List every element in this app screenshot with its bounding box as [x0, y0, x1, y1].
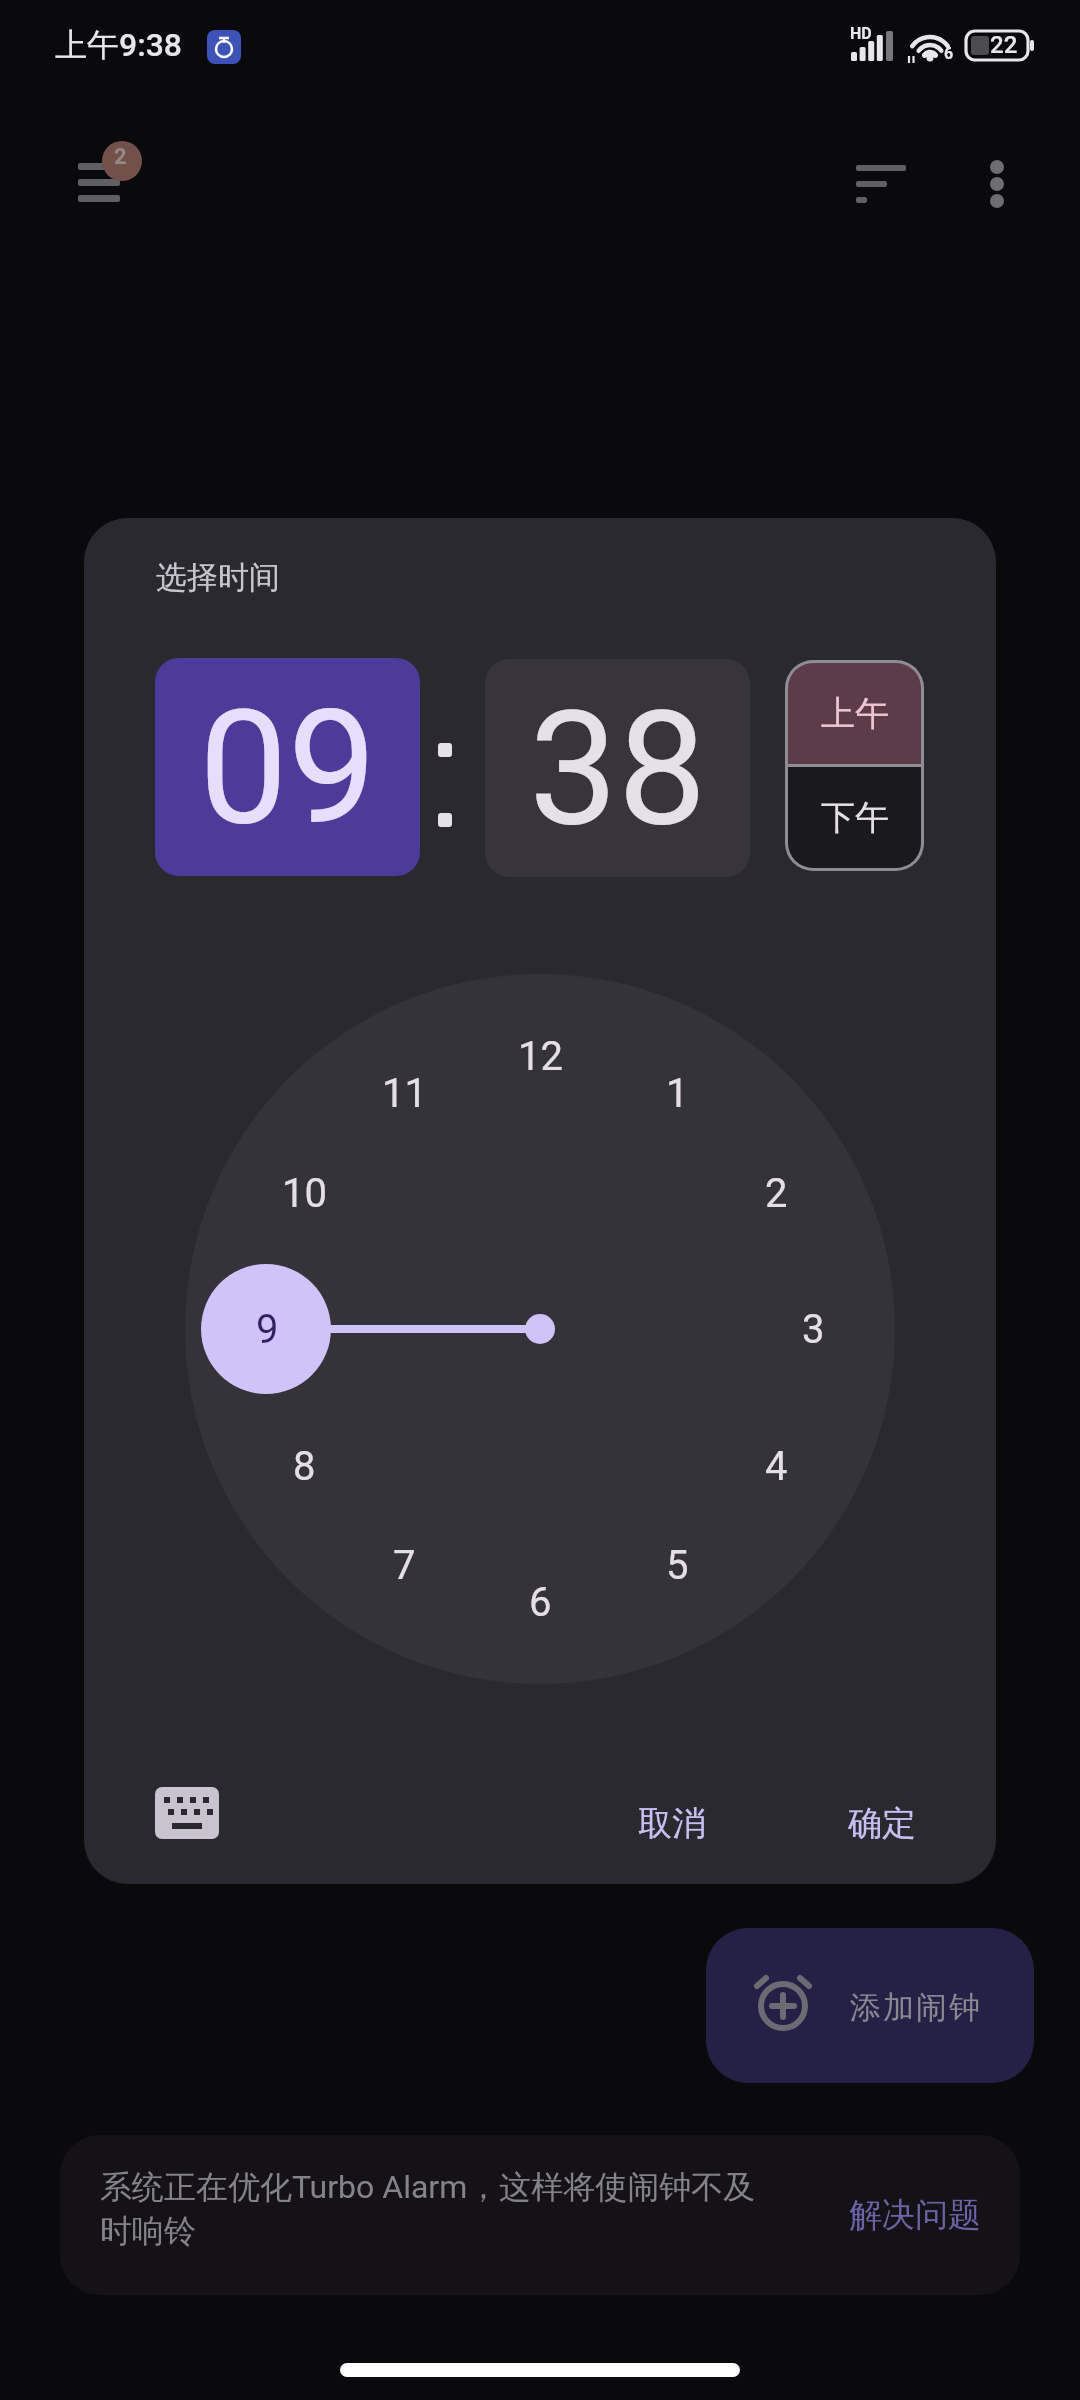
staticText: 2 — [765, 1170, 788, 1217]
button[interactable]: 添加闹钟 — [706, 1928, 1034, 2083]
button[interactable]: 确定 — [807, 1788, 957, 1858]
staticText: 6 — [944, 44, 954, 63]
staticText: 系统正在优化Turbo Alarm，这样将使闹钟不及 时响铃 — [100, 2167, 756, 2251]
staticText: 6 — [529, 1579, 552, 1626]
button[interactable] — [132, 1763, 242, 1863]
staticText: 9 — [256, 1306, 279, 1353]
staticText: 取消 — [638, 1802, 706, 1845]
staticText: 解决问题 — [849, 2194, 981, 2236]
staticText: 上午9:38 — [55, 25, 183, 65]
staticText: 09 — [199, 675, 377, 860]
staticText: 3 — [802, 1306, 825, 1353]
staticText: 添加闹钟 — [849, 1988, 981, 2027]
button[interactable] — [836, 145, 926, 225]
button[interactable]: 取消 — [597, 1788, 747, 1858]
button[interactable]: 下午 — [788, 767, 921, 868]
button[interactable] — [960, 140, 1034, 230]
staticText: 8 — [293, 1443, 316, 1490]
staticText: 12 — [518, 1033, 563, 1080]
button[interactable]: 09 — [155, 658, 420, 876]
button[interactable]: 2 — [70, 135, 150, 215]
staticText: 确定 — [848, 1802, 916, 1845]
staticText: 1 — [666, 1070, 689, 1117]
staticText: 5 — [666, 1542, 689, 1589]
staticText: 2 — [114, 144, 127, 170]
staticText: 4 — [765, 1443, 788, 1490]
staticText: 38 — [529, 676, 707, 861]
button[interactable]: 38 — [485, 659, 750, 877]
button[interactable]: 解决问题 — [830, 2175, 1000, 2255]
staticText: 选择时间 — [156, 558, 280, 597]
button[interactable]: 上午 — [788, 663, 921, 764]
staticText: HD — [850, 24, 872, 43]
staticText: 11 — [382, 1070, 427, 1117]
staticText: 22 — [990, 31, 1018, 59]
staticText: 下午 — [821, 796, 889, 839]
staticText: 10 — [282, 1170, 327, 1217]
staticText: 上午 — [821, 692, 889, 735]
staticText: 7 — [393, 1542, 416, 1589]
